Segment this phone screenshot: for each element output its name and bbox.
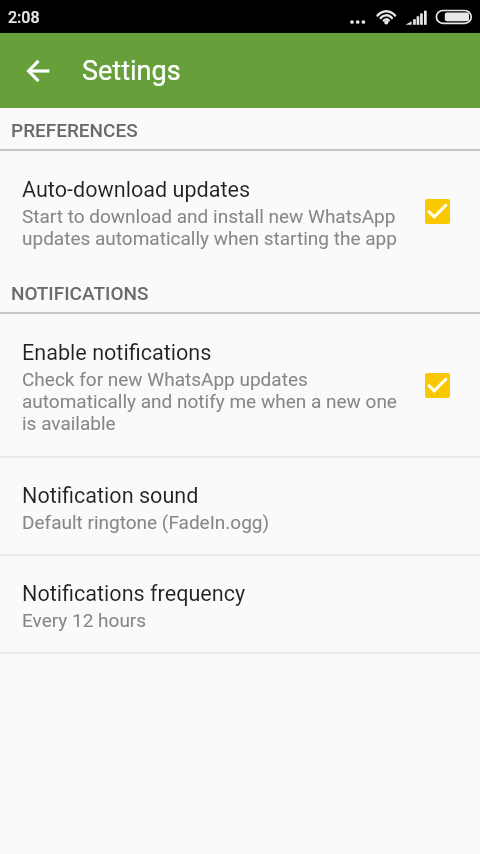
staticText: Auto-download updates (22, 177, 251, 203)
staticText: Check for new WhatsApp updates automatic… (22, 368, 400, 434)
button[interactable]: Notifications frequency (0, 556, 480, 652)
staticText: Settings (82, 55, 181, 87)
button[interactable]: Back (13, 46, 63, 96)
staticText: 2:08 (8, 8, 40, 27)
staticText: Notification sound (22, 483, 199, 509)
staticText: Start to download and install new WhatsA… (22, 205, 400, 249)
staticText: Notifications frequency (22, 581, 246, 607)
staticText: NOTIFICATIONS (11, 282, 480, 304)
button[interactable]: Enable notifications (0, 314, 480, 456)
button[interactable]: Auto-download updates checkbox (421, 195, 453, 227)
staticText: Enable notifications (22, 340, 212, 366)
staticText: Every 12 hours (22, 609, 147, 631)
button[interactable]: Enable notifications checkbox (421, 369, 453, 401)
button[interactable]: Auto-download updates (0, 151, 480, 271)
button[interactable]: Notification sound (0, 458, 480, 554)
staticText: Default ringtone (FadeIn.ogg) (22, 511, 270, 533)
staticText: PREFERENCES (11, 119, 480, 141)
